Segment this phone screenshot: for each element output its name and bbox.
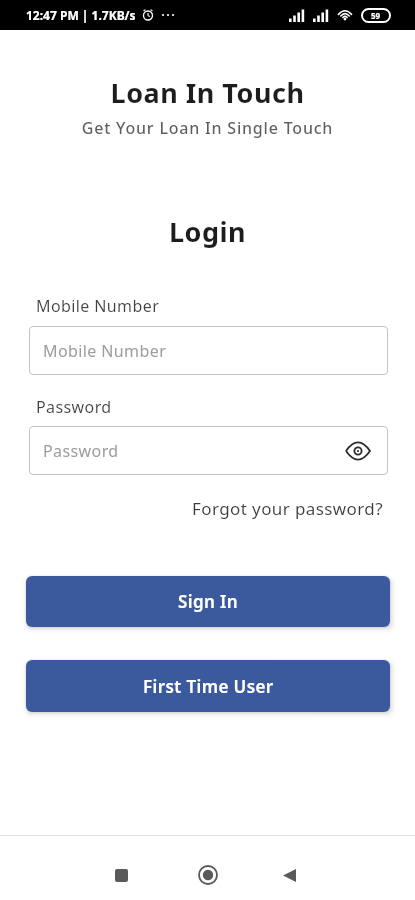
- staticText: Loan In Touch: [0, 74, 415, 111]
- button[interactable]: Sign In: [26, 576, 390, 627]
- staticText: 59: [371, 10, 381, 21]
- button[interactable]: Forgot your password?: [192, 497, 383, 520]
- button[interactable]: First Time User: [26, 660, 390, 712]
- button[interactable]: Mobile Number: [29, 326, 388, 375]
- staticText: Password: [36, 396, 112, 418]
- button[interactable]: [195, 862, 221, 888]
- staticText: 12:47 PM | 1.7KB/s: [26, 7, 136, 23]
- staticText: First Time User: [143, 675, 274, 698]
- staticText: Login: [0, 213, 415, 250]
- staticText: Password: [43, 440, 119, 462]
- staticText: Get Your Loan In Single Touch: [0, 117, 415, 139]
- button[interactable]: Password: [29, 426, 388, 475]
- button[interactable]: [276, 862, 302, 888]
- staticText: Mobile Number: [43, 340, 167, 362]
- staticText: Sign In: [178, 590, 239, 613]
- button[interactable]: [108, 862, 134, 888]
- staticText: Mobile Number: [36, 295, 160, 317]
